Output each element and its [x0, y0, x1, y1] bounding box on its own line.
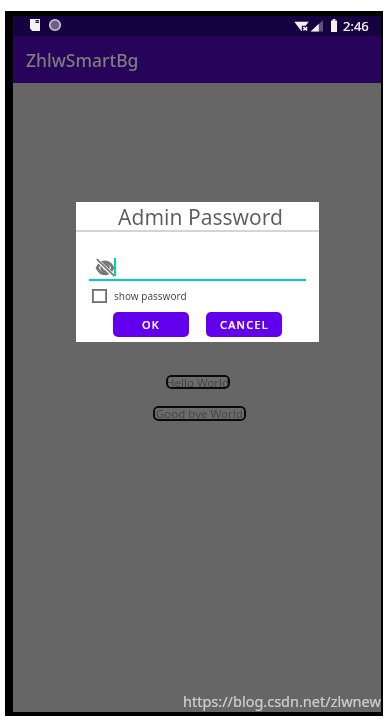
button[interactable]: Toggle password visibility [95, 259, 115, 276]
button[interactable]: CANCEL [206, 312, 282, 337]
button[interactable]: show password [92, 289, 187, 303]
staticText: Hello World [166, 375, 230, 389]
staticText: Admin Password [79, 203, 322, 232]
button[interactable]: Good bye World [153, 406, 246, 421]
staticText: show password [114, 289, 187, 303]
staticText: https://blog.csdn.net/zlwnew [183, 691, 381, 711]
button[interactable]: OK [113, 312, 189, 337]
staticText: OK [142, 317, 160, 332]
staticText: 2:46 [343, 17, 369, 35]
staticText: ZhlwSmartBg [26, 48, 139, 72]
staticText: CANCEL [220, 317, 269, 332]
button[interactable]: Hello World [166, 375, 230, 389]
staticText: Good bye World [156, 406, 243, 421]
